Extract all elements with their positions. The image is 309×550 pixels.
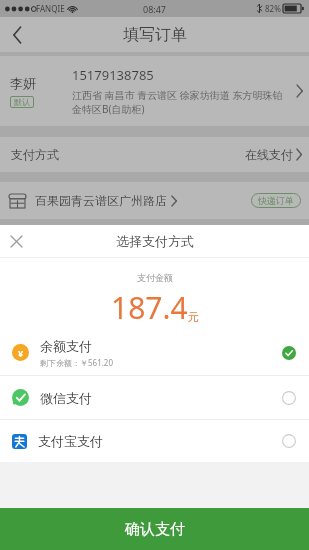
staticText: 187.4 [111, 287, 188, 328]
staticText: 选择支付方式 [116, 233, 194, 249]
staticText: 元 [188, 310, 199, 324]
button[interactable]: 确认支付 [0, 508, 309, 550]
staticText: 微信支付 [40, 390, 92, 406]
staticText: 确认支付 [125, 520, 185, 539]
button[interactable]: Close [0, 225, 32, 257]
staticText: 82% [265, 3, 281, 14]
staticText: ¥ [18, 347, 24, 359]
staticText: 在线支付 [245, 147, 293, 162]
staticText: 默认 [14, 97, 30, 107]
staticText: 江西省 南昌市 青云谱区 徐家坊街道 东方明珠铂金特区B(自助柜) [72, 88, 292, 116]
staticText: FANQIE [36, 3, 65, 14]
button[interactable]: 支付方式 [0, 137, 309, 172]
staticText: 填写订单 [123, 25, 187, 45]
staticText: 李妍 [10, 75, 36, 91]
staticText: 08:47 [143, 3, 167, 15]
button[interactable]: ¥ [0, 330, 309, 375]
button[interactable]: Back [0, 18, 34, 52]
button[interactable]: 百果园青云谱区广州路店 [0, 182, 309, 219]
staticText: 百果园青云谱区广州路店 [35, 193, 167, 208]
staticText: 支付宝支付 [38, 433, 103, 449]
staticText: 余额支付 [40, 338, 92, 354]
staticText: 15179138785 [72, 66, 154, 84]
button[interactable]: 支付宝支付 [0, 420, 309, 462]
staticText: 快递订单 [258, 195, 294, 206]
button[interactable]: 微信支付 [0, 376, 309, 419]
staticText: 支付方式 [11, 147, 59, 162]
button[interactable]: 李妍 [0, 56, 309, 126]
staticText: 剩下余额：￥561.20 [40, 357, 114, 368]
staticText: 支付金额 [137, 272, 173, 283]
